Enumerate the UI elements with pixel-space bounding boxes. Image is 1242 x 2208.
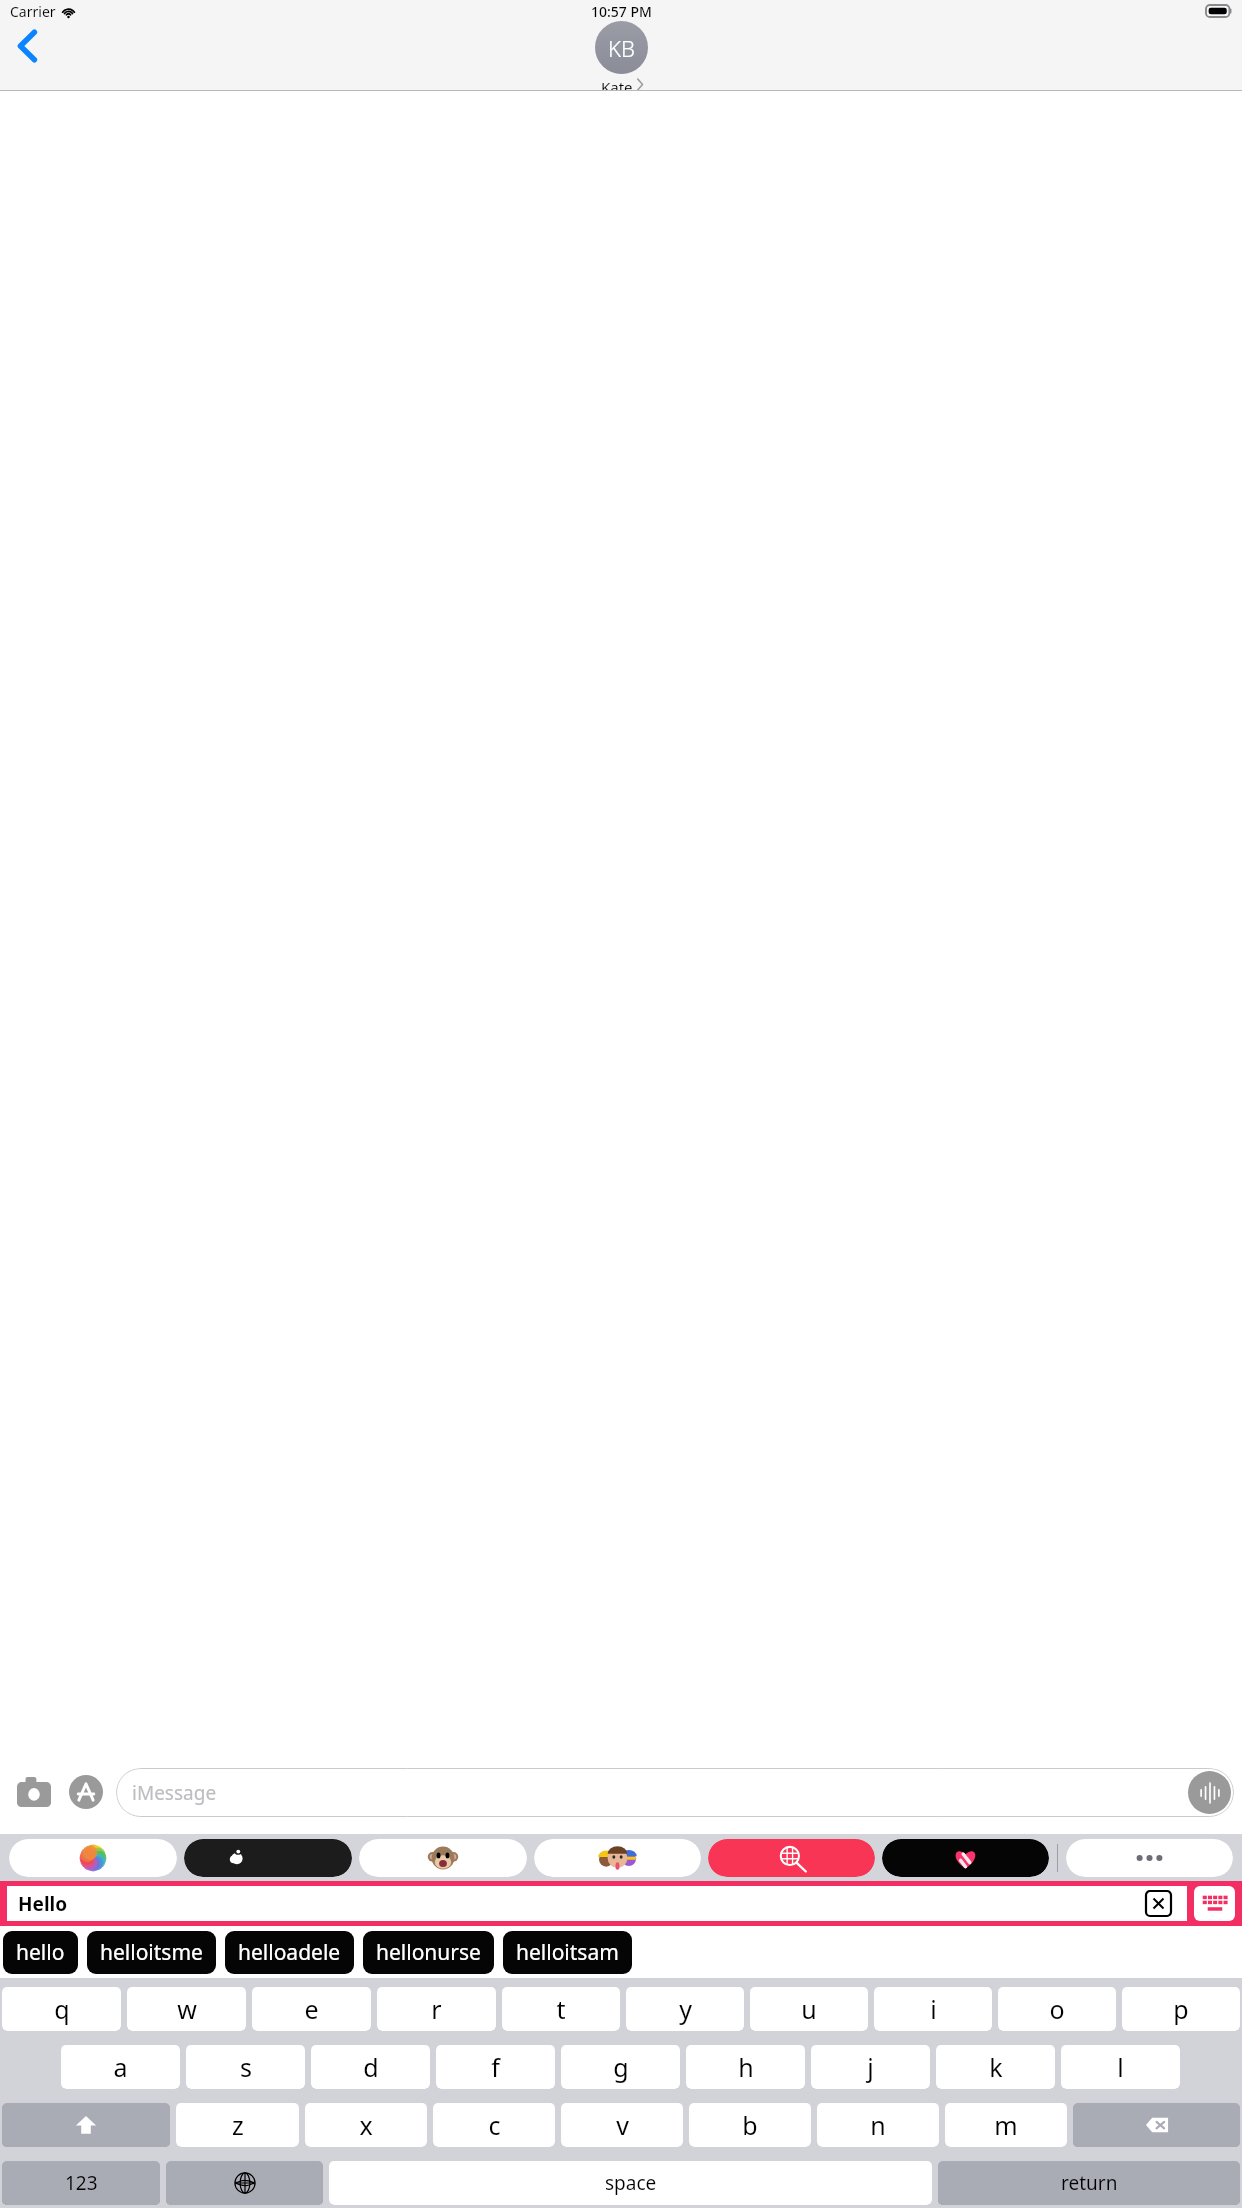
button[interactable]: space (329, 2161, 932, 2205)
button[interactable]: return (938, 2161, 1240, 2205)
button[interactable]: Animoji (359, 1839, 527, 1877)
button[interactable]: k (936, 2045, 1055, 2089)
staticText: u (801, 1992, 817, 2026)
staticText: Hello (18, 1891, 68, 1917)
staticText: s (240, 2050, 252, 2084)
button[interactable]: g (561, 2045, 680, 2089)
button[interactable]: o (998, 1987, 1116, 2031)
button[interactable]: z (176, 2103, 299, 2147)
button[interactable]: Show keyboard (1194, 1886, 1235, 1921)
button[interactable]: Photos (9, 1839, 177, 1877)
staticText: v (616, 2108, 629, 2142)
button[interactable]: l (1061, 2045, 1180, 2089)
button[interactable]: helloadele (225, 1931, 354, 1974)
button[interactable]: Shift (2, 2103, 170, 2147)
staticText: j (867, 2050, 874, 2084)
button[interactable]: Images (708, 1839, 875, 1877)
button[interactable]: i (874, 1987, 992, 2031)
button[interactable]: Digital Touch (882, 1839, 1049, 1877)
staticText: r (431, 1992, 442, 2026)
staticText: hello (16, 1938, 65, 1967)
button[interactable]: Change keyboard (166, 2161, 323, 2205)
staticText: g (613, 2050, 629, 2084)
staticText: d (363, 2050, 379, 2084)
button[interactable]: Back (6, 24, 50, 68)
button[interactable]: a (61, 2045, 180, 2089)
button[interactable]: x (305, 2103, 427, 2147)
button[interactable]: d (311, 2045, 430, 2089)
staticText: z (232, 2108, 244, 2142)
staticText: p (1173, 1992, 1189, 2026)
button[interactable]: Camera (8, 1766, 60, 1818)
staticText: return (1061, 2170, 1118, 2196)
button[interactable]: Apple Pay (184, 1839, 352, 1877)
button[interactable]: 123 (2, 2161, 160, 2205)
button[interactable]: n (817, 2103, 939, 2147)
staticText: space (605, 2170, 657, 2196)
button[interactable]: j (811, 2045, 930, 2089)
button[interactable]: y (626, 1987, 744, 2031)
button[interactable]: e (252, 1987, 371, 2031)
button[interactable]: helloitsam (503, 1931, 632, 1974)
button[interactable]: r (377, 1987, 496, 2031)
staticText: w (177, 1992, 197, 2026)
staticText: y (679, 1992, 692, 2026)
button[interactable]: Backspace (1073, 2103, 1240, 2147)
staticText: l (1117, 2050, 1124, 2084)
button[interactable]: hellonurse (363, 1931, 494, 1974)
staticText: Carrier (10, 2, 56, 21)
button[interactable]: Audio message (1188, 1771, 1231, 1814)
staticText: 123 (65, 2170, 98, 2196)
button[interactable]: App Store (60, 1766, 112, 1818)
staticText: hellonurse (376, 1938, 481, 1967)
button[interactable]: iMessage (116, 1768, 1234, 1817)
button[interactable]: Memoji (534, 1839, 701, 1877)
staticText: 10:57 PM (591, 2, 652, 21)
staticText: q (54, 1992, 70, 2026)
button[interactable]: q (2, 1987, 121, 2031)
button[interactable]: hello (3, 1931, 78, 1974)
staticText: KB (608, 33, 635, 63)
button[interactable]: m (945, 2103, 1067, 2147)
staticText: b (742, 2108, 758, 2142)
button[interactable]: f (436, 2045, 555, 2089)
staticText: c (488, 2108, 501, 2142)
button[interactable]: w (127, 1987, 246, 2031)
staticText: iMessage (132, 1780, 217, 1806)
staticText: t (556, 1992, 566, 2026)
staticText: e (304, 1992, 319, 2026)
staticText: a (113, 2050, 128, 2084)
button[interactable]: t (502, 1987, 620, 2031)
button[interactable]: KB (595, 21, 648, 91)
staticText: helloitsam (516, 1938, 619, 1967)
button[interactable]: b (689, 2103, 811, 2147)
staticText: helloitsme (100, 1938, 203, 1967)
button[interactable]: s (186, 2045, 305, 2089)
button[interactable]: v (561, 2103, 683, 2147)
button[interactable]: u (750, 1987, 868, 2031)
button[interactable]: h (686, 2045, 805, 2089)
staticText: Kate (601, 77, 633, 91)
staticText: k (989, 2050, 1003, 2084)
button[interactable]: More (1066, 1839, 1233, 1877)
staticText: h (738, 2050, 754, 2084)
staticText: o (1049, 1992, 1065, 2026)
button[interactable]: p (1122, 1987, 1240, 2031)
staticText: n (870, 2108, 886, 2142)
staticText: i (930, 1992, 937, 2026)
staticText: m (994, 2108, 1018, 2142)
button[interactable]: Clear (1146, 1891, 1171, 1916)
button[interactable]: Hello (7, 1886, 1187, 1921)
staticText: f (491, 2050, 500, 2084)
button[interactable]: c (433, 2103, 555, 2147)
staticText: x (359, 2108, 373, 2142)
staticText: helloadele (238, 1938, 341, 1967)
button[interactable]: helloitsme (87, 1931, 216, 1974)
